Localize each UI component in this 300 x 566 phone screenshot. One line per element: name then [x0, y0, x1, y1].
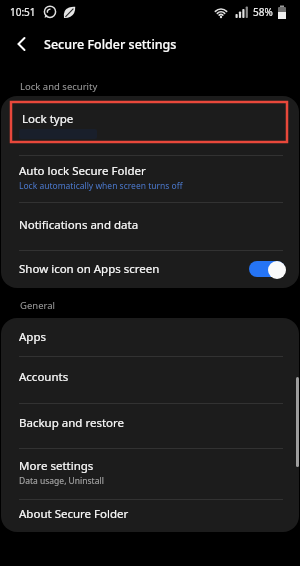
staticText: Notifications and data	[19, 217, 139, 233]
staticText: More settings	[19, 458, 94, 474]
staticText: 10:51	[10, 5, 36, 19]
button[interactable]: Accounts	[1, 357, 299, 403]
button[interactable]: Show icon on Apps screen	[1, 251, 299, 288]
staticText: Lock type	[22, 111, 74, 127]
staticText: Lock and security	[20, 80, 98, 93]
staticText: Show icon on Apps screen	[19, 261, 160, 277]
button[interactable]	[0, 24, 44, 64]
staticText: General	[20, 299, 56, 312]
staticText: Accounts	[19, 369, 69, 385]
staticText: 58%	[253, 5, 273, 19]
staticText: Secure Folder settings	[44, 36, 177, 53]
button[interactable]: Notifications and data	[1, 203, 299, 250]
staticText: About Secure Folder	[19, 506, 129, 522]
button[interactable]: About Secure Folder	[1, 500, 299, 532]
button[interactable]: More settings	[1, 449, 299, 499]
button[interactable]: Backup and restore	[1, 404, 299, 448]
staticText: Auto lock Secure Folder	[19, 163, 146, 179]
button[interactable]: Auto lock Secure Folder	[1, 156, 299, 202]
staticText: Apps	[19, 329, 47, 345]
staticText: Backup and restore	[19, 415, 125, 431]
button[interactable]: Lock type	[1, 96, 299, 155]
staticText: Lock automatically when screen turns off	[19, 180, 183, 192]
button[interactable]: Apps	[1, 318, 299, 356]
staticText: Data usage, Uninstall	[19, 475, 104, 487]
